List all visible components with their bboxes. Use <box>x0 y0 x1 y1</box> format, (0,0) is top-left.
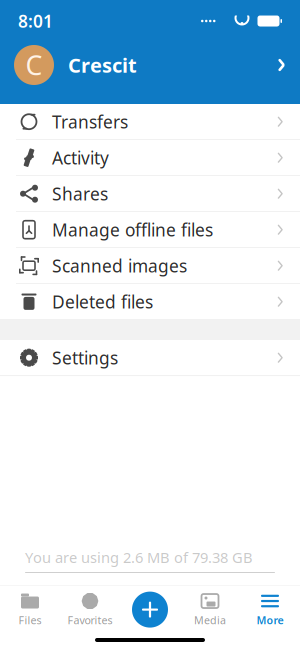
staticText: Transfers <box>52 110 128 133</box>
button[interactable]: Manage offline files <box>0 212 300 248</box>
button[interactable]: Scanned images <box>0 248 300 284</box>
staticText: Activity <box>52 146 109 169</box>
staticText: Files <box>18 613 41 627</box>
staticText: Settings <box>52 346 118 369</box>
button[interactable]: Media <box>180 586 240 634</box>
staticText: Favorites <box>67 613 112 627</box>
button[interactable]: Deleted files <box>0 284 300 320</box>
staticText: More <box>256 613 283 627</box>
button[interactable]: C <box>0 34 300 96</box>
staticText: 8:01 <box>18 9 53 32</box>
button[interactable]: Transfers <box>0 104 300 140</box>
button[interactable]: Add <box>120 586 180 634</box>
staticText: Manage offline files <box>52 218 213 241</box>
button[interactable]: More <box>240 586 300 634</box>
staticText: C <box>25 47 42 83</box>
staticText: Scanned images <box>52 254 187 277</box>
button[interactable]: Settings <box>0 340 300 376</box>
staticText: Media <box>194 613 226 627</box>
button[interactable]: Favorites <box>60 586 120 634</box>
staticText: Shares <box>52 182 108 205</box>
button[interactable]: Files <box>0 586 60 634</box>
staticText: Deleted files <box>52 290 153 313</box>
button[interactable]: Activity <box>0 140 300 176</box>
staticText: You are using 2.6 MB of 79.38 GB <box>25 547 253 567</box>
staticText: Crescit <box>68 52 137 78</box>
button[interactable]: Shares <box>0 176 300 212</box>
